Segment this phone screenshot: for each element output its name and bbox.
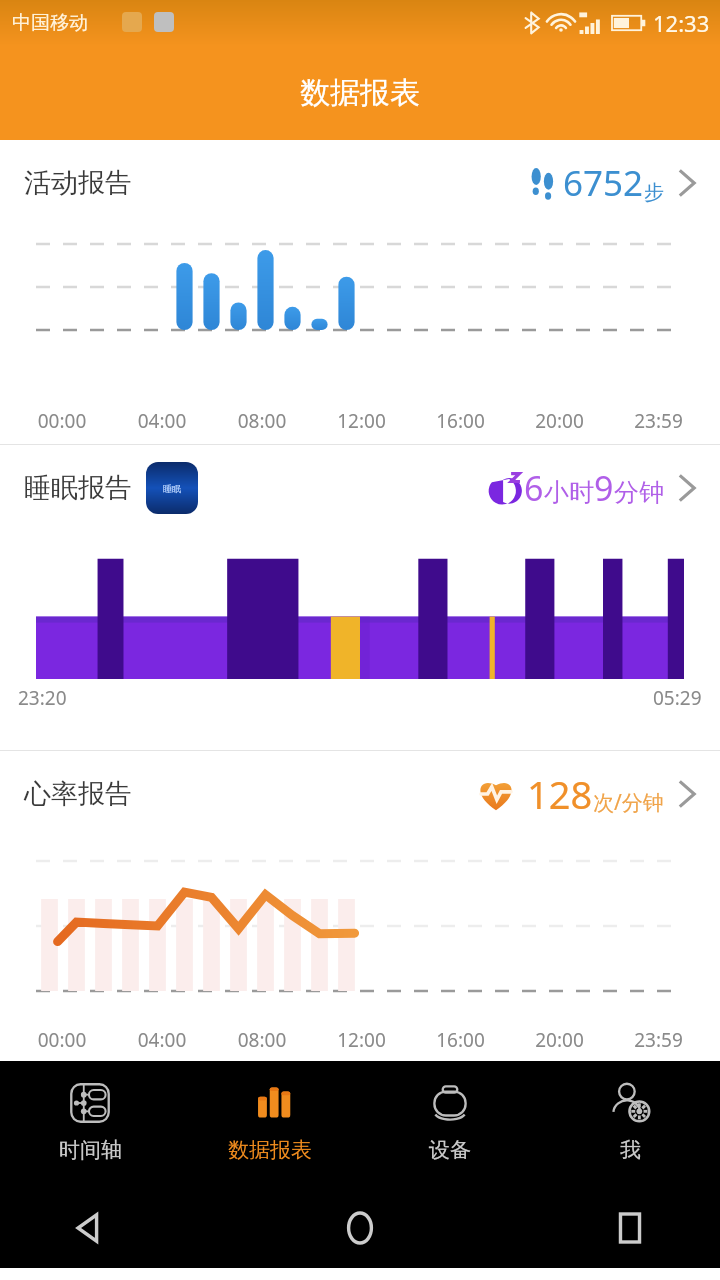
staticText: 数据报表: [300, 74, 420, 112]
other: Open: [678, 168, 696, 198]
button[interactable]: 睡眠报告: [0, 445, 720, 531]
staticText: 次/分钟: [593, 788, 664, 817]
staticText: 活动报告: [24, 166, 132, 200]
button[interactable]: 设备: [360, 1061, 540, 1188]
staticText: 128: [527, 768, 593, 820]
button[interactable]: Home: [330, 1198, 390, 1258]
staticText: 睡眠报告: [24, 471, 132, 505]
staticText: 12:33: [653, 8, 710, 38]
button[interactable]: 数据报表: [180, 1061, 360, 1188]
staticText: 我: [620, 1137, 641, 1163]
button[interactable]: 时间轴: [0, 1061, 180, 1188]
button[interactable]: Back: [60, 1198, 120, 1258]
staticText: 00:00: [12, 408, 112, 434]
staticText: 23:59: [609, 1027, 708, 1053]
staticText: 04:00: [112, 1027, 212, 1053]
staticText: 数据报表: [228, 1137, 312, 1163]
staticText: 08:00: [212, 1027, 312, 1053]
staticText: 23:59: [609, 408, 708, 434]
staticText: 中国移动: [12, 11, 88, 35]
staticText: 12:00: [312, 1027, 411, 1053]
staticText: 00:00: [12, 1027, 112, 1053]
staticText: 设备: [429, 1137, 471, 1163]
staticText: 小时: [544, 477, 594, 508]
staticText: 睡眠: [163, 483, 181, 494]
staticText: 9: [594, 465, 614, 511]
staticText: 16:00: [411, 1027, 510, 1053]
staticText: 6: [524, 465, 544, 511]
staticText: 16:00: [411, 408, 510, 434]
staticText: 20:00: [510, 1027, 609, 1053]
staticText: 心率报告: [24, 777, 132, 811]
other: Open: [678, 779, 696, 809]
staticText: 6752: [563, 159, 644, 207]
other: Open: [678, 473, 696, 503]
button[interactable]: Recents: [600, 1198, 660, 1258]
staticText: 时间轴: [59, 1137, 122, 1163]
button[interactable]: 心率报告: [0, 751, 720, 837]
staticText: 23:20: [18, 685, 67, 711]
staticText: 12:00: [312, 408, 411, 434]
button[interactable]: 活动报告: [0, 140, 720, 226]
staticText: 08:00: [212, 408, 312, 434]
staticText: 04:00: [112, 408, 212, 434]
button[interactable]: 我: [540, 1061, 720, 1188]
staticText: 20:00: [510, 408, 609, 434]
staticText: 步: [644, 180, 664, 205]
staticText: 分钟: [614, 477, 664, 508]
staticText: 05:29: [653, 685, 702, 711]
